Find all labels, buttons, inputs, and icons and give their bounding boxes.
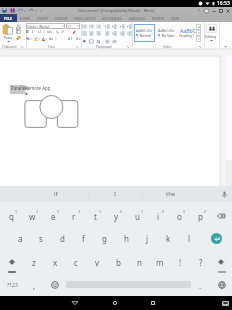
button[interactable]: Calibri (Body) bbox=[26, 23, 65, 29]
button[interactable]: m bbox=[150, 253, 170, 271]
button[interactable] bbox=[112, 31, 117, 36]
staticText: Font bbox=[48, 45, 55, 49]
button[interactable]: AaBbC bbox=[178, 24, 199, 42]
button[interactable]: DESIGN bbox=[55, 14, 68, 22]
button[interactable]: ? bbox=[191, 253, 211, 271]
button[interactable] bbox=[120, 24, 125, 29]
button[interactable]: o bbox=[169, 207, 189, 225]
button[interactable] bbox=[96, 39, 101, 44]
staticText: 9 bbox=[183, 209, 186, 214]
staticText: f bbox=[82, 233, 85, 244]
button[interactable]: d bbox=[52, 229, 72, 247]
staticText: U bbox=[38, 29, 42, 34]
button[interactable] bbox=[196, 24, 201, 30]
button[interactable]: INSERT bbox=[37, 14, 49, 22]
button[interactable]: Back bbox=[67, 296, 83, 310]
button[interactable]: VIEW bbox=[171, 14, 180, 22]
button[interactable]: AaBbCcDc bbox=[134, 24, 155, 42]
staticText: HOME bbox=[20, 16, 31, 21]
button[interactable]: k bbox=[158, 229, 178, 247]
button[interactable]: t bbox=[85, 207, 105, 225]
button[interactable]: Shift bbox=[211, 253, 231, 271]
button[interactable]: REFERENCES bbox=[102, 14, 123, 22]
button[interactable]: Shift bbox=[2, 253, 22, 271]
button[interactable]: s bbox=[31, 229, 51, 247]
button[interactable]: e bbox=[43, 207, 63, 225]
button[interactable]: a bbox=[10, 229, 30, 247]
button[interactable] bbox=[127, 24, 132, 29]
button[interactable]: i bbox=[148, 207, 168, 225]
button[interactable]: FILE bbox=[0, 14, 17, 22]
button[interactable]: 11 bbox=[66, 23, 80, 29]
button[interactable] bbox=[89, 31, 94, 36]
staticText: A bbox=[42, 36, 45, 41]
button[interactable]: n bbox=[129, 253, 149, 271]
button[interactable]: j bbox=[137, 229, 157, 247]
button[interactable]: c bbox=[66, 253, 86, 271]
button[interactable]: Backspace bbox=[211, 207, 231, 225]
button[interactable]: PAGE LAYOUT bbox=[74, 14, 96, 22]
button[interactable]: Recents bbox=[145, 296, 161, 310]
button[interactable]: g bbox=[94, 229, 114, 247]
button[interactable] bbox=[89, 24, 94, 29]
button[interactable]: I bbox=[104, 186, 126, 202]
button[interactable]: HOME bbox=[20, 14, 31, 22]
button[interactable]: Hide keyboard bbox=[220, 296, 230, 310]
button[interactable] bbox=[96, 31, 101, 36]
button[interactable]: r bbox=[64, 207, 84, 225]
staticText: Normal bbox=[139, 34, 152, 38]
button[interactable]: u bbox=[127, 207, 147, 225]
button[interactable] bbox=[127, 31, 132, 36]
button[interactable]: w bbox=[22, 207, 42, 225]
button[interactable]: Voice input bbox=[220, 190, 229, 199]
button[interactable] bbox=[82, 39, 87, 44]
button[interactable]: AaBbCcDc bbox=[156, 24, 177, 42]
button[interactable]: Find bbox=[206, 24, 217, 33]
button[interactable]: ?123 bbox=[3, 279, 21, 291]
staticText: VIEW bbox=[171, 16, 180, 21]
button[interactable]: if bbox=[45, 186, 67, 202]
button[interactable] bbox=[105, 39, 110, 44]
button[interactable]: h bbox=[116, 229, 136, 247]
button[interactable]: l bbox=[179, 229, 199, 247]
button[interactable]: z bbox=[24, 253, 44, 271]
button[interactable]: q bbox=[1, 207, 21, 225]
staticText: Aa bbox=[49, 36, 54, 41]
button[interactable] bbox=[105, 24, 110, 29]
button[interactable]: the bbox=[160, 186, 182, 202]
staticText: b bbox=[116, 257, 121, 268]
button[interactable] bbox=[112, 39, 117, 44]
button[interactable] bbox=[105, 31, 110, 36]
button[interactable]: . bbox=[190, 276, 210, 294]
staticText: a bbox=[18, 233, 23, 244]
button[interactable]: y bbox=[106, 207, 126, 225]
staticText: ! bbox=[179, 257, 182, 268]
other: Undo bbox=[18, 8, 23, 13]
button[interactable]: MAILINGS bbox=[129, 14, 146, 22]
button[interactable]: x bbox=[45, 253, 65, 271]
button[interactable] bbox=[196, 36, 201, 42]
button[interactable]: p bbox=[190, 207, 210, 225]
button[interactable]: REVIEW bbox=[152, 14, 165, 22]
staticText: ? bbox=[198, 8, 200, 13]
staticText: i bbox=[157, 211, 160, 222]
button[interactable]: Home bbox=[107, 296, 123, 310]
button[interactable]: Language bbox=[212, 276, 232, 294]
button[interactable]: , bbox=[24, 276, 44, 294]
button[interactable]: v bbox=[87, 253, 107, 271]
button[interactable]: ! bbox=[170, 253, 190, 271]
button[interactable]: Emoji bbox=[45, 276, 65, 294]
button[interactable]: b bbox=[108, 253, 128, 271]
button[interactable] bbox=[196, 30, 201, 36]
button[interactable]: Enter bbox=[211, 233, 222, 244]
button[interactable] bbox=[120, 31, 125, 36]
button[interactable]: f bbox=[73, 229, 93, 247]
staticText: Paragraph bbox=[96, 45, 112, 49]
button[interactable] bbox=[112, 24, 117, 29]
staticText: Editing bbox=[205, 34, 217, 39]
button[interactable] bbox=[96, 24, 101, 29]
button[interactable] bbox=[82, 24, 87, 29]
button[interactable] bbox=[89, 39, 94, 44]
